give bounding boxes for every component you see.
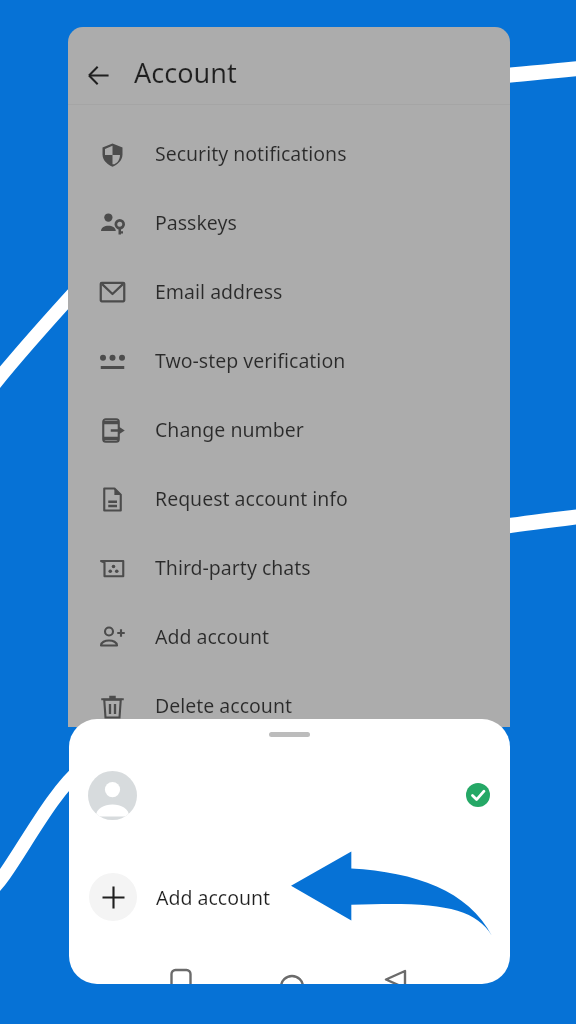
- button[interactable]: Delete account: [68, 671, 510, 727]
- staticText: Request account info: [155, 485, 348, 512]
- staticText: Delete account: [155, 692, 292, 719]
- button[interactable]: Two-step verification: [68, 326, 510, 395]
- staticText: Email address: [155, 278, 283, 305]
- button[interactable]: Passkeys: [68, 188, 510, 257]
- staticText: Third-party chats: [155, 554, 311, 581]
- button[interactable]: Add account: [68, 602, 510, 671]
- button[interactable]: Recent apps: [158, 950, 204, 984]
- button[interactable]: Security notifications: [68, 119, 510, 188]
- staticText: Change number: [155, 416, 304, 443]
- button[interactable]: Change number: [68, 395, 510, 464]
- staticText: Add account: [155, 623, 270, 650]
- staticText: Account: [134, 54, 237, 91]
- button[interactable]: Home: [269, 950, 315, 984]
- staticText: Passkeys: [155, 209, 237, 236]
- button[interactable]: Back: [74, 51, 122, 99]
- button[interactable]: Back: [373, 950, 419, 984]
- button[interactable]: Add account: [69, 869, 510, 925]
- button[interactable]: [69, 767, 510, 823]
- button[interactable]: Request account info: [68, 464, 510, 533]
- staticText: Two-step verification: [155, 347, 346, 374]
- staticText: Add account: [156, 884, 271, 911]
- staticText: Security notifications: [155, 140, 347, 167]
- button[interactable]: Third-party chats: [68, 533, 510, 602]
- button[interactable]: Email address: [68, 257, 510, 326]
